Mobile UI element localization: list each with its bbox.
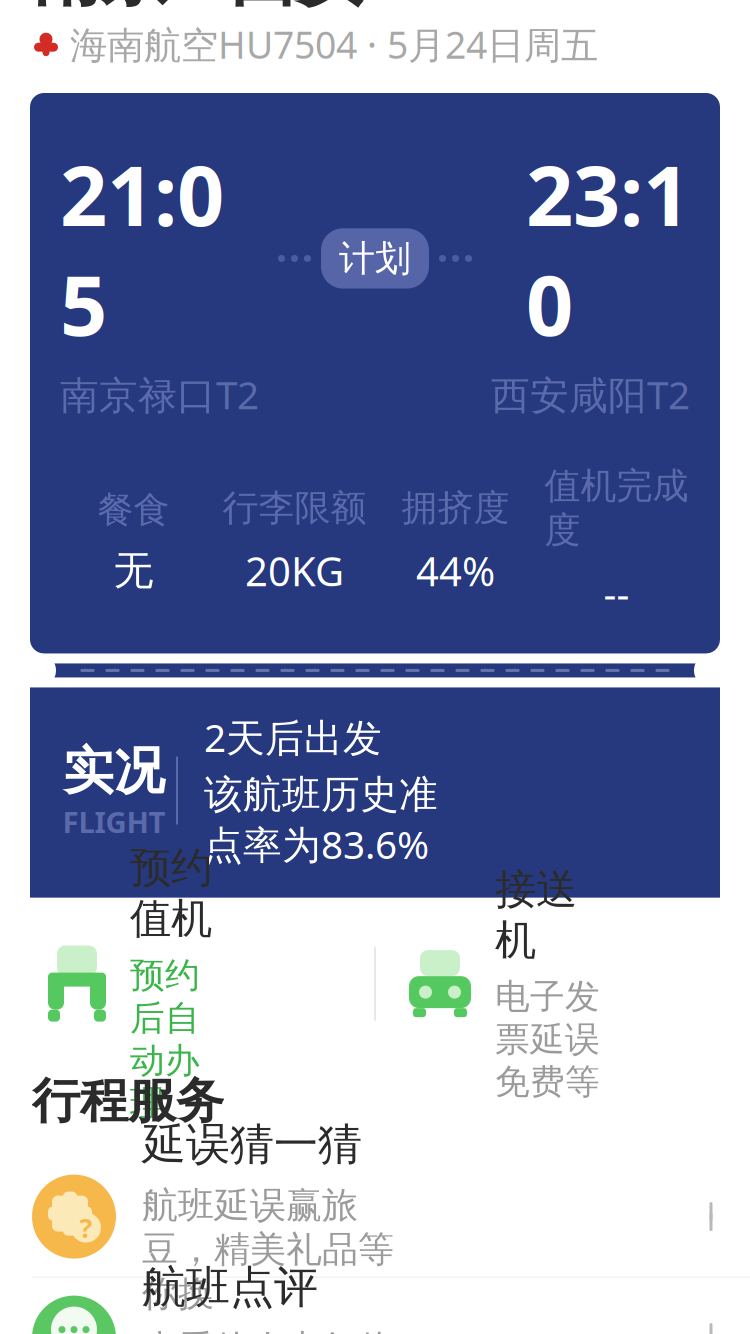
- staticText: 电子发票延误免费等: [495, 975, 600, 1103]
- staticText: 查看他人出行体验: [142, 1326, 394, 1334]
- staticText: 该航班历史准点率为83.6%: [204, 771, 438, 870]
- staticText: --: [603, 566, 629, 619]
- staticText: 餐食: [97, 488, 169, 532]
- staticText: 21:05: [60, 139, 224, 359]
- staticText: 值机完成度: [544, 464, 688, 552]
- staticText: 西安咸阳T2: [491, 368, 690, 420]
- staticText: 23:10: [526, 139, 690, 359]
- staticText: 南京禄口T2: [60, 368, 259, 420]
- staticText: 拥挤度: [401, 486, 509, 530]
- staticText: 2天后出发: [204, 711, 382, 763]
- button[interactable]: 接送机: [375, 924, 750, 1044]
- staticText: 预约值机: [130, 843, 212, 944]
- staticText: 预约后自动办理: [130, 954, 200, 1124]
- staticText: FLIGHT: [62, 802, 165, 841]
- button[interactable]: 预约值机: [0, 924, 375, 1044]
- staticText: 实况: [63, 740, 165, 802]
- staticText: 航班点评: [142, 1260, 318, 1314]
- staticText: 44%: [416, 544, 495, 597]
- staticText: 延误猜一猜: [142, 1117, 362, 1171]
- staticText: 计划: [339, 236, 411, 280]
- button[interactable]: 航班点评: [0, 1278, 750, 1334]
- staticText: 行李限额: [222, 486, 366, 530]
- staticText: 无: [113, 546, 153, 595]
- button[interactable]: 南京 - 西安: [32, 0, 718, 5]
- staticText: ?: [79, 1210, 92, 1245]
- staticText: 航班延误赢旅豆，精美礼品等你换: [142, 1183, 394, 1316]
- button[interactable]: ?: [0, 1157, 750, 1278]
- staticText: 海南航空HU7504 · 5月24日周五: [70, 19, 598, 69]
- staticText: 南京 - 西安: [32, 0, 366, 18]
- staticText: 行程服务: [32, 1072, 224, 1131]
- staticText: 20KG: [245, 544, 344, 597]
- staticText: 接送机: [495, 864, 577, 965]
